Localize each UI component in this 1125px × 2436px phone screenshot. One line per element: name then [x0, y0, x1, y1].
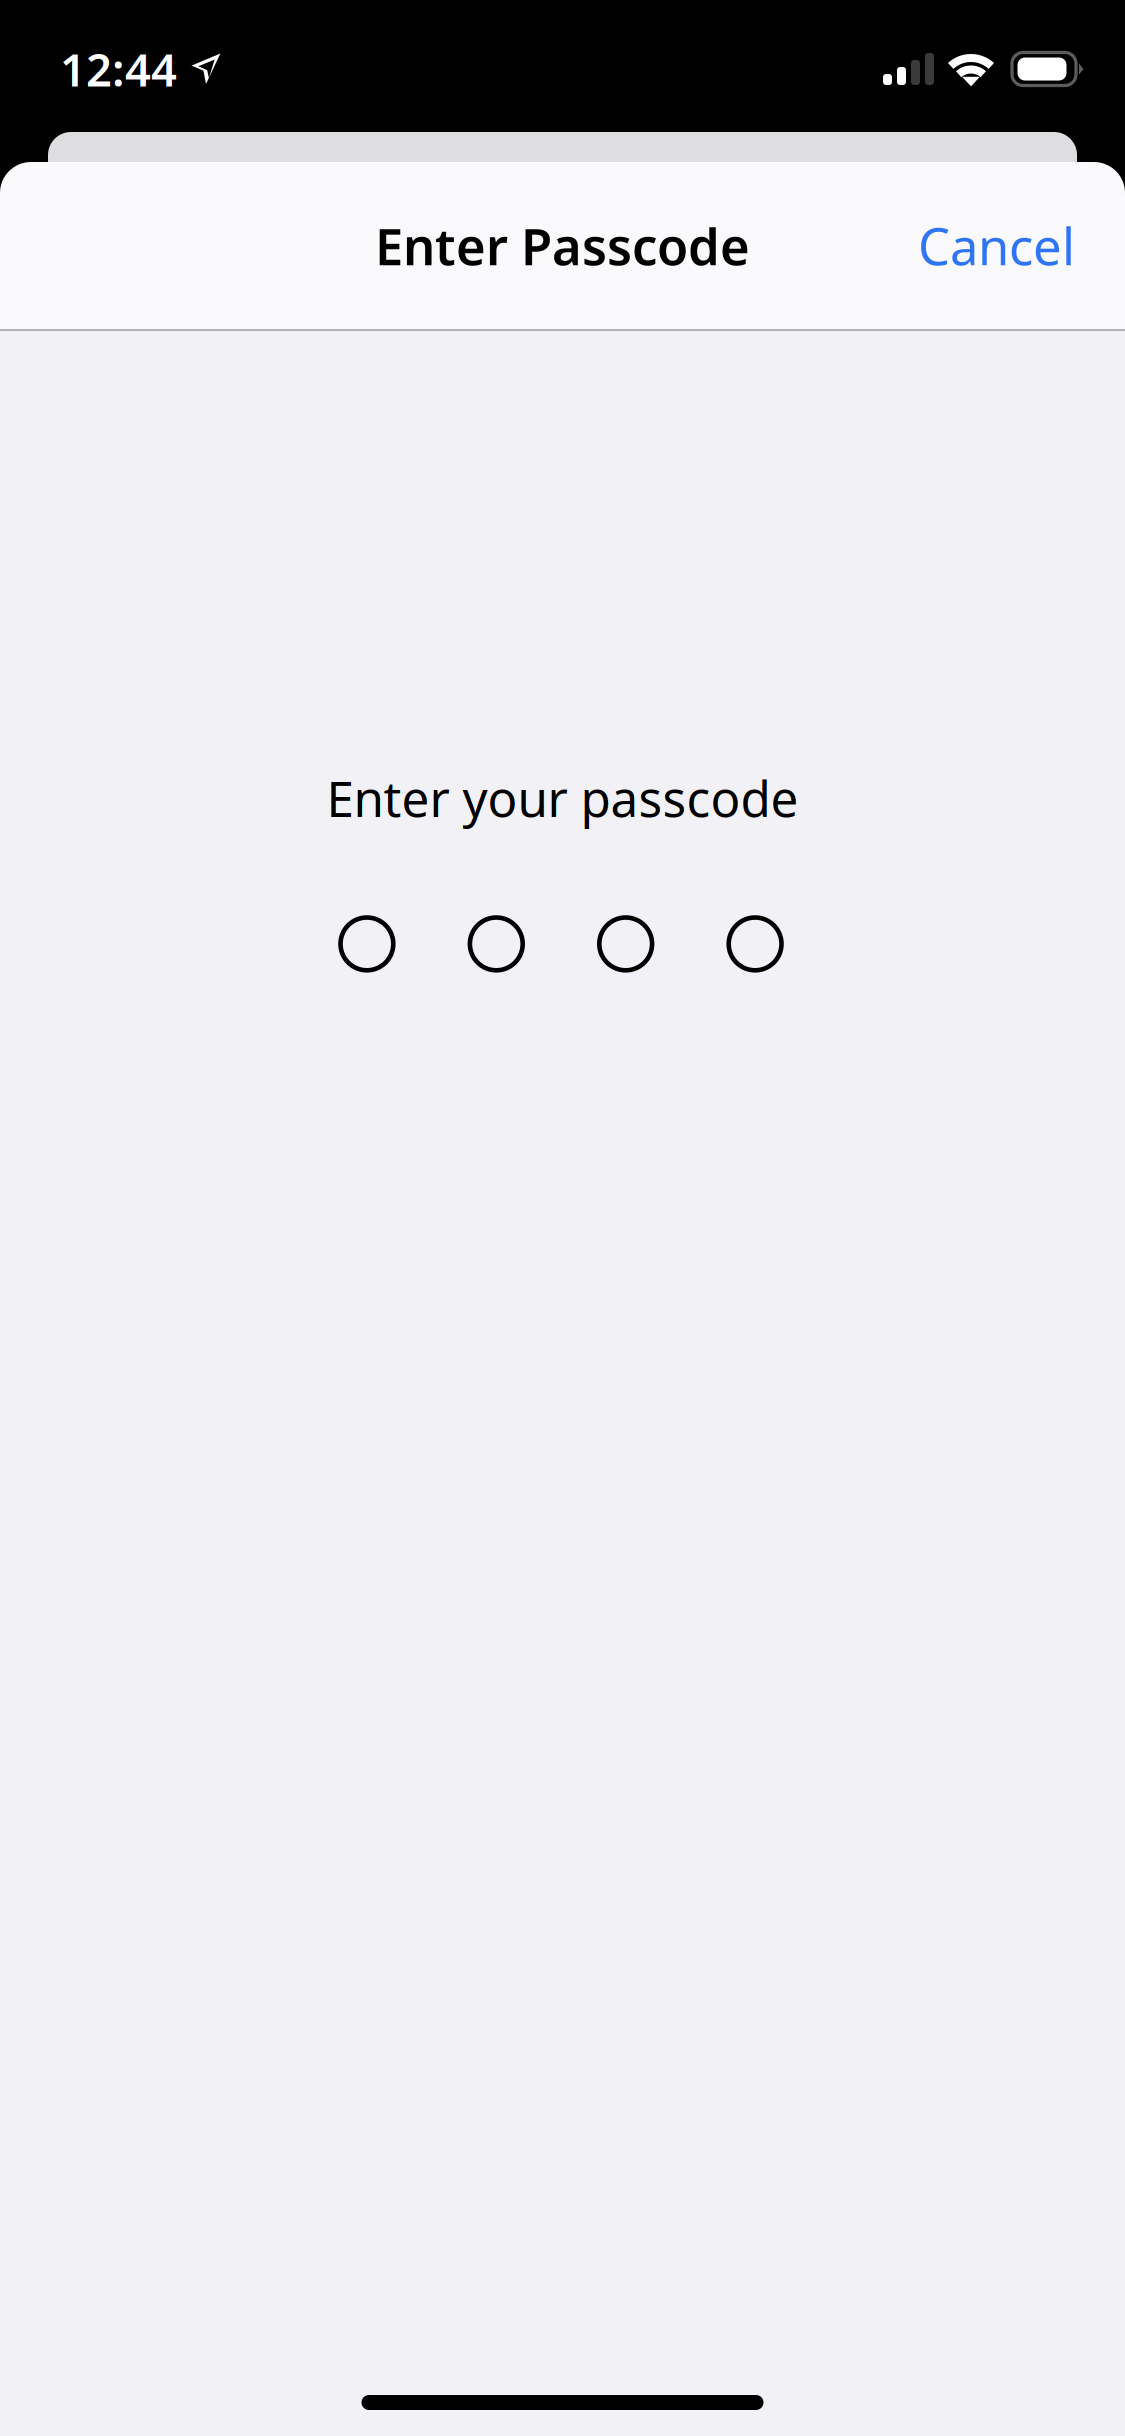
- staticText: 12:44: [60, 39, 177, 99]
- button[interactable]: Cancel: [894, 184, 1099, 307]
- staticText: Enter Passcode: [375, 212, 750, 279]
- staticText: Cancel: [918, 212, 1075, 279]
- staticText: Enter your passcode: [326, 765, 798, 830]
